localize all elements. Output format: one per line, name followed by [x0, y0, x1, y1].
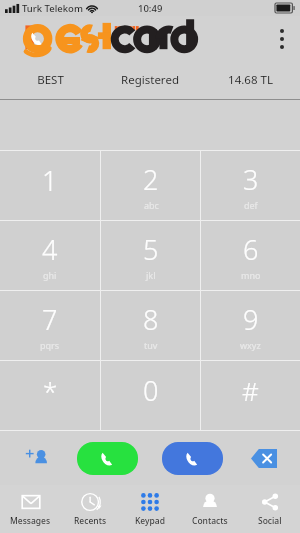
- staticText: Messages: [10, 515, 51, 527]
- button[interactable]: 4: [0, 221, 100, 290]
- staticText: 9: [243, 301, 259, 338]
- staticText: 3: [243, 161, 259, 198]
- button[interactable]: *: [0, 361, 100, 430]
- button[interactable]: 7: [0, 291, 100, 360]
- staticText: ghi: [43, 269, 57, 281]
- staticText: *: [43, 373, 58, 408]
- button[interactable]: Add contact: [8, 431, 65, 485]
- staticText: 7: [42, 301, 58, 338]
- button[interactable]: Contacts: [180, 485, 240, 533]
- staticText: 5: [143, 231, 159, 268]
- staticText: Turk Telekom: [22, 2, 83, 15]
- button[interactable]: 3: [201, 151, 300, 220]
- button[interactable]: Registered: [100, 61, 200, 99]
- button[interactable]: 2: [101, 151, 200, 220]
- staticText: 6: [243, 231, 259, 268]
- button[interactable]: More options: [264, 16, 300, 61]
- staticText: Keypad: [135, 515, 165, 527]
- staticText: Recents: [74, 515, 107, 527]
- staticText: 0: [143, 372, 159, 409]
- staticText: pqrs: [40, 339, 60, 351]
- staticText: 10:49: [138, 2, 163, 15]
- button[interactable]: 6: [201, 221, 300, 290]
- staticText: Registered: [121, 72, 179, 88]
- button[interactable]: 9: [201, 291, 300, 360]
- button[interactable]: Delete: [235, 431, 292, 485]
- button[interactable]: Call via internet: [162, 442, 223, 475]
- button[interactable]: Recents: [60, 485, 120, 533]
- staticText: abc: [144, 199, 159, 211]
- button[interactable]: 1: [0, 151, 100, 220]
- button[interactable]: 5: [101, 221, 200, 290]
- staticText: wxyz: [240, 339, 261, 351]
- staticText: 14.68 TL: [228, 72, 273, 88]
- button[interactable]: 0: [101, 361, 200, 430]
- button[interactable]: 8: [101, 291, 200, 360]
- staticText: jkl: [146, 269, 156, 281]
- staticText: BEST: [37, 72, 64, 88]
- staticText: 1: [42, 162, 58, 199]
- staticText: 4: [42, 231, 58, 268]
- staticText: 2: [143, 161, 159, 198]
- staticText: Contacts: [192, 515, 228, 527]
- staticText: 8: [143, 301, 159, 338]
- button[interactable]: 14.68 TL: [200, 61, 300, 99]
- button[interactable]: Social: [240, 485, 300, 533]
- button[interactable]: #: [201, 361, 300, 430]
- staticText: def: [244, 199, 258, 211]
- button[interactable]: Keypad: [120, 485, 180, 533]
- button[interactable]: BEST: [0, 61, 100, 99]
- staticText: tuv: [144, 339, 158, 351]
- staticText: #: [242, 373, 259, 408]
- button[interactable]: Call: [77, 442, 138, 475]
- button[interactable]: Messages: [0, 485, 60, 533]
- staticText: mno: [241, 269, 261, 281]
- staticText: Social: [258, 515, 282, 527]
